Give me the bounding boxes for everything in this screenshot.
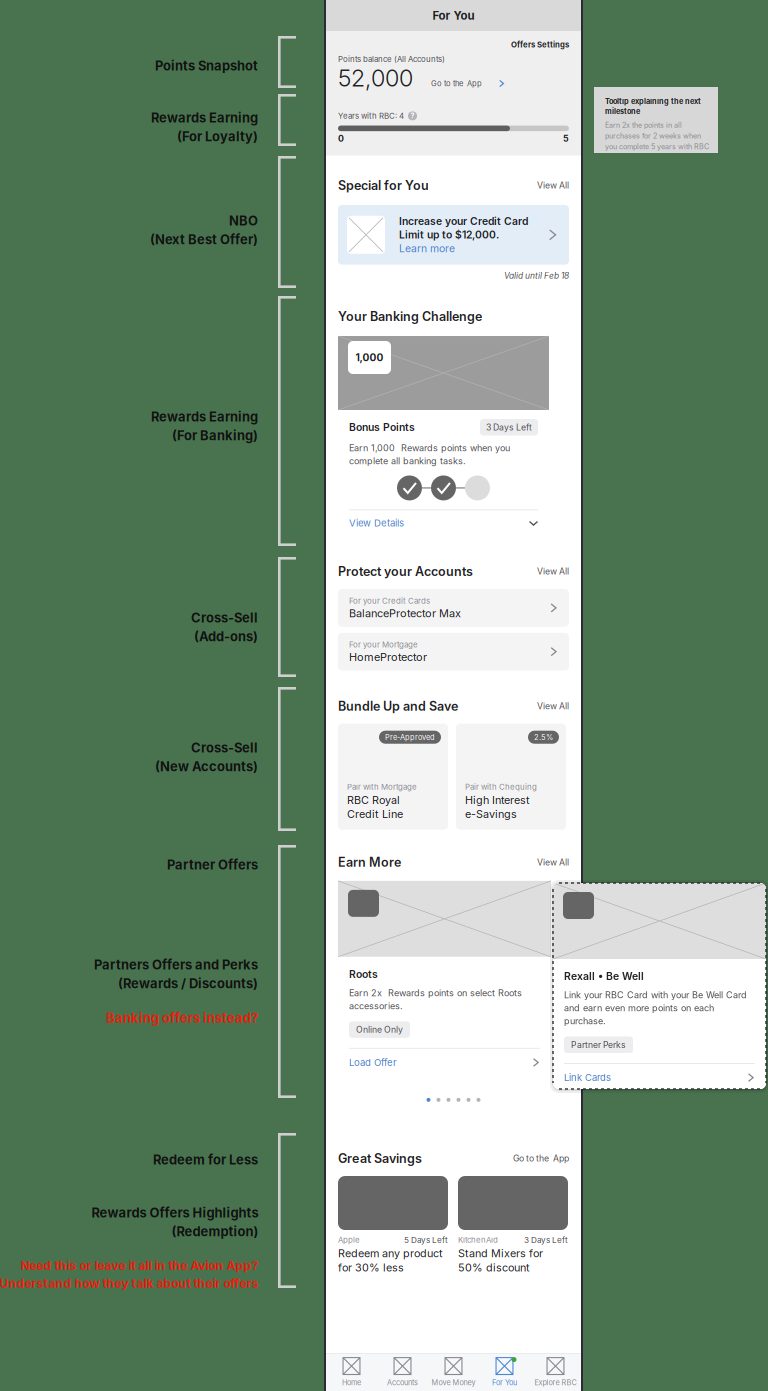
staticText: Partners Offers and Perks (94, 957, 258, 973)
staticText: BalanceProtector Max (349, 606, 461, 620)
staticText: Earn 2x Rewards points on select Roots (349, 987, 522, 998)
staticText: Years with RBC: 4 (338, 111, 404, 121)
staticText: View All (537, 180, 569, 191)
staticText: (Rewards / Discounts) (118, 976, 258, 991)
staticText: Credit Line (347, 808, 403, 821)
staticText: 3 Days Left (524, 1235, 568, 1245)
staticText: 0 (338, 133, 344, 144)
staticText: For your Credit Cards (349, 596, 430, 605)
staticText: Online Only (356, 1024, 403, 1035)
staticText: 5 (563, 133, 569, 144)
staticText: Link your RBC Card with your Be Well Car… (564, 990, 747, 1001)
staticText: Learn more (399, 242, 455, 255)
button[interactable]: Pre-Approved (338, 724, 448, 830)
staticText: Rewards Earning (151, 110, 258, 126)
button[interactable]: View All (537, 857, 569, 867)
staticText: Rewards Earning (151, 409, 258, 425)
staticText: (New Accounts) (155, 759, 258, 774)
staticText: For your Mortgage (349, 640, 418, 649)
button[interactable]: View All (537, 180, 569, 191)
staticText: (For Banking) (172, 428, 258, 443)
button[interactable]: View All (537, 701, 569, 711)
button[interactable]: About years with RBC (408, 111, 417, 120)
button[interactable]: Link Cards (564, 1064, 755, 1092)
staticText: 2.5% (534, 733, 553, 742)
staticText: Points balance (All Accounts) (338, 54, 445, 64)
staticText: milestone (605, 107, 640, 116)
staticText: purchases for 2 weeks when (605, 131, 701, 140)
staticText: Protect your Accounts (338, 564, 473, 579)
button[interactable]: 2.5% (456, 724, 566, 830)
staticText: for 30% less (338, 1261, 404, 1274)
button[interactable]: Increase your Credit Card (338, 205, 569, 265)
staticText: Valid until Feb 18 (504, 271, 569, 281)
staticText: Special for You (338, 178, 429, 193)
staticText: Understand how they talk about their off… (0, 1276, 258, 1291)
staticText: (Next Best Offer) (150, 232, 258, 247)
staticText: Apple (338, 1235, 360, 1245)
staticText: Go to the App (431, 79, 482, 88)
staticText: e-Savings (465, 808, 517, 821)
staticText: 5 Days Left (404, 1235, 448, 1245)
staticText: View All (537, 566, 569, 577)
button[interactable]: Home (326, 1353, 377, 1391)
staticText: Pre-Approved (385, 733, 435, 742)
button[interactable]: Go to the App (413, 79, 505, 92)
staticText: Load Offer (349, 1057, 397, 1068)
staticText: Banking offers instead? (106, 1010, 258, 1026)
staticText: 50% discount (458, 1261, 530, 1274)
staticText: ? (410, 111, 414, 120)
staticText: Rewards Offers Highlights (91, 1205, 258, 1221)
staticText: For You (492, 1378, 517, 1387)
button[interactable]: Explore RBC (530, 1353, 581, 1391)
staticText: Bonus Points (349, 421, 415, 434)
staticText: Accounts (387, 1378, 418, 1387)
button[interactable]: For your Mortgage (338, 633, 569, 670)
button[interactable]: Load Offer (349, 1049, 540, 1077)
button[interactable]: View Details (349, 510, 538, 537)
staticText: Redeem any product (338, 1247, 443, 1260)
button[interactable]: KitchenAid (458, 1176, 568, 1274)
staticText: KitchenAid (458, 1235, 498, 1245)
button[interactable]: Offers Settings (511, 40, 569, 49)
button[interactable]: For your Credit Cards (338, 589, 569, 627)
staticText: Partner Perks (571, 1039, 626, 1050)
staticText: Need this or leave it all in the Avion A… (20, 1258, 258, 1273)
button[interactable]: Accounts (377, 1353, 428, 1391)
staticText: View All (537, 701, 569, 711)
button[interactable]: Apple (338, 1176, 448, 1274)
staticText: Rexall • Be Well (564, 970, 644, 983)
staticText: Tooltip explaining the next (605, 97, 701, 106)
staticText: For You (432, 9, 474, 22)
staticText: View Details (349, 517, 404, 529)
staticText: Cross-Sell (191, 610, 258, 626)
staticText: Go to the App (513, 1153, 569, 1164)
staticText: 1,000 (355, 351, 383, 364)
staticText: Offers Settings (511, 40, 569, 49)
staticText: (For Loyalty) (177, 129, 258, 144)
staticText: Home (342, 1378, 361, 1387)
staticText: Your Banking Challenge (338, 309, 482, 324)
staticText: Bundle Up and Save (338, 698, 458, 714)
button[interactable]: For You (479, 1353, 530, 1391)
staticText: purchase. (564, 1015, 606, 1026)
staticText: NBO (229, 213, 258, 229)
staticText: View All (537, 857, 569, 867)
staticText: Earn 2x the points in all (605, 121, 682, 129)
staticText: Redeem for Less (153, 1152, 258, 1168)
staticText: and earn even more points on each (564, 1003, 714, 1014)
staticText: complete all banking tasks. (349, 455, 466, 466)
button[interactable]: Go to the App (513, 1153, 569, 1164)
button[interactable]: View All (537, 566, 569, 577)
staticText: you complete 5 years with RBC (605, 142, 709, 151)
staticText: Explore RBC (534, 1378, 576, 1387)
staticText: Pair with Chequing (465, 782, 537, 791)
staticText: (Add-ons) (194, 629, 258, 644)
button[interactable]: Move Money (428, 1353, 479, 1391)
staticText: Increase your Credit Card (399, 215, 528, 227)
staticText: Earn More (338, 855, 401, 870)
staticText: Partner Offers (167, 857, 258, 873)
staticText: Move Money (431, 1378, 475, 1387)
staticText: Stand Mixers for (458, 1247, 543, 1260)
staticText: High Interest (465, 794, 530, 807)
